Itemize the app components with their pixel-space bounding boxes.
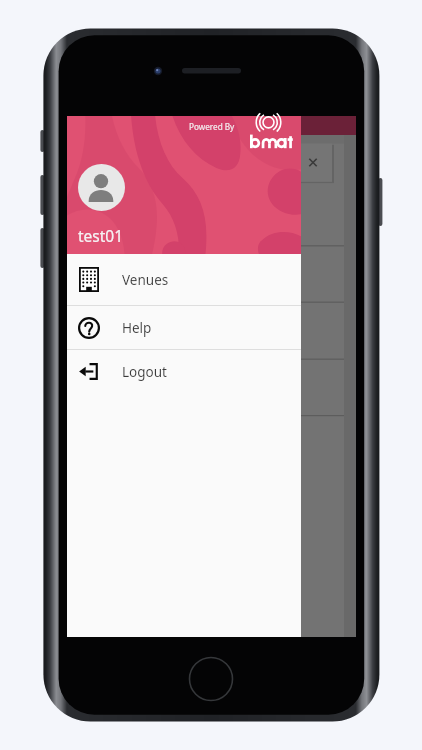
staticText: Logout [122,363,167,381]
button[interactable]: Help [67,306,301,349]
button[interactable]: Account [78,164,125,211]
staticText: Help [122,319,152,337]
staticText: Venues [122,271,169,289]
staticText: test01 [78,225,124,246]
button[interactable]: Logout [67,350,301,393]
button[interactable]: Close [301,144,332,182]
button[interactable]: Venues [67,254,301,305]
staticText: Powered By [189,121,235,132]
